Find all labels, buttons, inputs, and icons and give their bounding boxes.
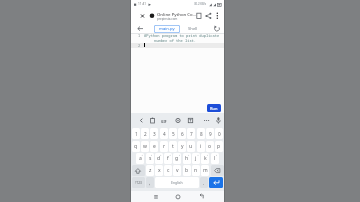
button[interactable]: b — [183, 165, 191, 176]
button[interactable]: q — [132, 141, 140, 152]
button[interactable] — [132, 165, 145, 176]
staticText: 11:41 — [138, 2, 147, 6]
button[interactable]: i — [197, 141, 205, 152]
button[interactable]: p — [215, 141, 223, 152]
button[interactable]: j — [192, 153, 200, 164]
button[interactable]: Shell — [185, 25, 201, 33]
button[interactable] — [139, 11, 147, 21]
button[interactable]: 3 — [150, 128, 158, 139]
staticText: e — [153, 143, 156, 150]
button[interactable]: 0 — [215, 128, 223, 139]
staticText: f — [167, 155, 169, 162]
staticText: b — [185, 167, 189, 174]
button[interactable]: 2 — [141, 128, 149, 139]
button[interactable]: . — [200, 177, 208, 188]
button[interactable]: 8 — [197, 128, 205, 139]
button[interactable]: u — [187, 141, 195, 152]
button[interactable]: 5 — [169, 128, 177, 139]
staticText: 8 — [200, 131, 203, 137]
staticText: w — [143, 143, 147, 150]
button[interactable]: 1 — [132, 128, 140, 139]
button[interactable]: English — [155, 177, 199, 188]
staticText: p — [217, 143, 221, 150]
button[interactable]: 7 — [187, 128, 195, 139]
button[interactable]: w — [141, 141, 149, 152]
staticText: q — [134, 143, 138, 150]
button[interactable]: , — [146, 177, 154, 188]
staticText: English — [171, 180, 183, 185]
staticText: d — [157, 155, 161, 162]
button[interactable]: g — [173, 153, 181, 164]
button[interactable]: s — [146, 153, 154, 164]
staticText: k — [204, 155, 207, 162]
staticText: Run — [210, 106, 218, 111]
staticText: g — [175, 155, 179, 162]
staticText: . — [203, 180, 205, 186]
button[interactable]: 4 — [160, 128, 168, 139]
button[interactable]: d — [155, 153, 163, 164]
staticText: 1 — [135, 131, 138, 137]
staticText: , — [149, 180, 151, 186]
staticText: 6 — [181, 131, 184, 137]
staticText: j — [195, 155, 197, 162]
staticText: 4 — [163, 131, 166, 137]
staticText: t — [172, 143, 174, 150]
staticText: 0 — [218, 131, 221, 137]
button[interactable]: m — [201, 165, 209, 176]
button[interactable]: 6 — [178, 128, 186, 139]
staticText: m — [203, 167, 208, 174]
staticText: prepinsta.com — [157, 17, 178, 21]
button[interactable] — [136, 115, 147, 126]
staticText: x — [158, 167, 161, 174]
button[interactable]: 9 — [206, 128, 214, 139]
button[interactable]: main.py — [154, 25, 180, 33]
button[interactable]: ?123 — [132, 177, 145, 188]
staticText: Online Python Co... — [157, 11, 197, 17]
button[interactable]: h — [183, 153, 191, 164]
staticText: #Python program to print duplicate — [144, 33, 220, 38]
staticText: o — [208, 143, 212, 150]
staticText: l — [214, 155, 216, 162]
button[interactable]: a — [136, 153, 144, 164]
button[interactable] — [209, 177, 223, 188]
button[interactable]: r — [160, 141, 168, 152]
staticText: 1 — [138, 33, 141, 38]
staticText: GIF — [161, 119, 167, 123]
button[interactable]: e — [150, 141, 158, 152]
staticText: z — [149, 167, 152, 174]
staticText: n — [194, 167, 198, 174]
staticText: 2 — [138, 43, 141, 48]
button[interactable]: y — [178, 141, 186, 152]
staticText: a — [139, 155, 142, 162]
staticText: c — [167, 167, 170, 174]
staticText: 30.2 KB/s — [194, 2, 207, 6]
staticText: u — [189, 143, 193, 150]
staticText: i — [200, 143, 202, 150]
staticText: ?123 — [135, 181, 142, 185]
button[interactable] — [211, 165, 224, 176]
staticText: 9 — [209, 131, 212, 137]
staticText: s — [149, 155, 152, 162]
button[interactable]: n — [192, 165, 200, 176]
staticText: number of the list. — [154, 38, 197, 43]
button[interactable]: o — [206, 141, 214, 152]
button[interactable]: k — [201, 153, 209, 164]
button[interactable]: f — [164, 153, 172, 164]
staticText: 7 — [190, 131, 193, 137]
staticText: 2 — [144, 131, 147, 137]
button[interactable]: c — [164, 165, 172, 176]
button[interactable]: v — [173, 165, 181, 176]
button[interactable]: Run — [207, 104, 221, 112]
button[interactable]: x — [155, 165, 163, 176]
staticText: main.py — [159, 26, 175, 32]
staticText: 5 — [172, 131, 175, 137]
staticText: y — [181, 143, 184, 150]
button[interactable]: t — [169, 141, 177, 152]
staticText: r — [163, 143, 166, 150]
button[interactable]: l — [211, 153, 219, 164]
button[interactable]: z — [146, 165, 154, 176]
staticText: v — [176, 167, 179, 174]
staticText: Shell — [188, 26, 198, 32]
staticText: 3 — [153, 131, 156, 137]
staticText: h — [185, 155, 189, 162]
